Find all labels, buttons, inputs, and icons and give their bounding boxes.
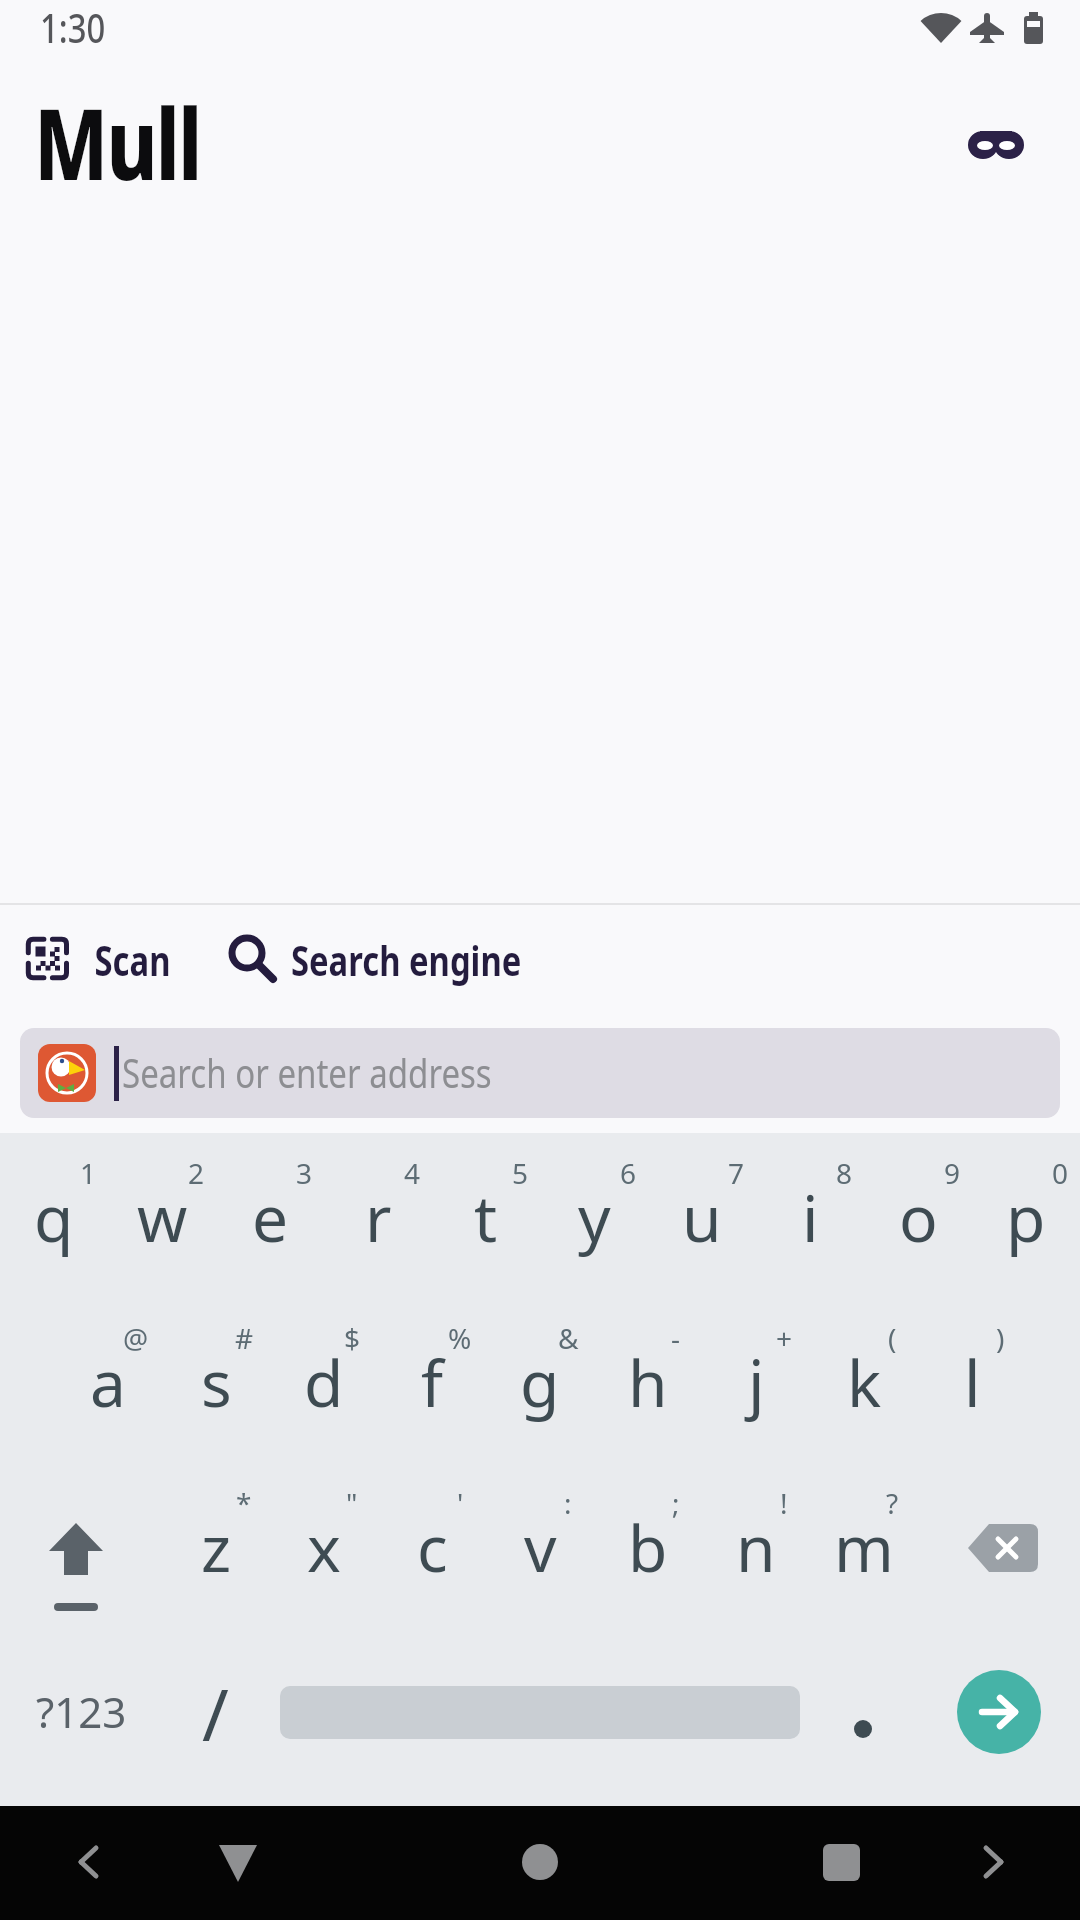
staticText: l bbox=[964, 1339, 981, 1426]
staticText: d bbox=[304, 1339, 344, 1426]
staticText: j bbox=[748, 1339, 765, 1426]
staticText: ?123 bbox=[36, 1683, 127, 1740]
staticText: e bbox=[252, 1174, 289, 1261]
staticText: q bbox=[34, 1174, 74, 1261]
staticText: 0 bbox=[1052, 1154, 1069, 1192]
staticText: ) bbox=[996, 1319, 1005, 1357]
staticText: 1 bbox=[80, 1154, 97, 1192]
staticText: b bbox=[628, 1504, 668, 1591]
staticText: 3 bbox=[296, 1154, 313, 1192]
staticText: o bbox=[899, 1174, 938, 1261]
staticText: # bbox=[235, 1319, 254, 1357]
staticText: Scan bbox=[94, 932, 170, 988]
staticText: k bbox=[847, 1339, 882, 1426]
staticText: 1:30 bbox=[40, 0, 106, 54]
staticText: 9 bbox=[944, 1154, 961, 1192]
staticText: Search engine bbox=[291, 932, 522, 988]
staticText: a bbox=[90, 1339, 126, 1426]
staticText: u bbox=[682, 1174, 722, 1261]
staticText: @ bbox=[123, 1319, 149, 1357]
staticText: f bbox=[421, 1339, 444, 1426]
staticText: & bbox=[558, 1319, 579, 1357]
staticText: h bbox=[628, 1339, 668, 1426]
staticText: ( bbox=[888, 1319, 897, 1357]
staticText: 5 bbox=[512, 1154, 529, 1192]
staticText: y bbox=[578, 1174, 611, 1261]
staticText: : bbox=[564, 1484, 572, 1522]
staticText: * bbox=[236, 1484, 252, 1522]
staticText: 6 bbox=[620, 1154, 637, 1192]
staticText: g bbox=[520, 1339, 560, 1426]
staticText: m bbox=[834, 1504, 894, 1591]
staticText: ; bbox=[672, 1484, 680, 1522]
staticText: x bbox=[307, 1504, 341, 1591]
staticText: n bbox=[736, 1504, 776, 1591]
staticText: " bbox=[346, 1484, 358, 1522]
staticText: Search or enter address bbox=[122, 1045, 492, 1099]
staticText: + bbox=[776, 1319, 793, 1357]
staticText: r bbox=[365, 1174, 392, 1261]
staticText: % bbox=[448, 1319, 472, 1357]
staticText: ! bbox=[780, 1484, 788, 1522]
staticText: $ bbox=[344, 1319, 361, 1357]
staticText: 8 bbox=[836, 1154, 853, 1192]
staticText: 7 bbox=[728, 1154, 745, 1192]
staticText: ? bbox=[886, 1484, 899, 1522]
staticText: v bbox=[524, 1504, 557, 1591]
staticText: / bbox=[202, 1664, 229, 1762]
staticText: i bbox=[802, 1174, 819, 1261]
staticText: Mull bbox=[34, 75, 201, 208]
staticText: w bbox=[137, 1174, 188, 1261]
staticText: 2 bbox=[188, 1154, 205, 1192]
staticText: 4 bbox=[404, 1154, 421, 1192]
staticText: t bbox=[474, 1174, 498, 1261]
staticText: ' bbox=[457, 1484, 464, 1522]
staticText: - bbox=[671, 1319, 681, 1357]
staticText: z bbox=[201, 1504, 232, 1591]
staticText: c bbox=[417, 1504, 448, 1591]
staticText: p bbox=[1006, 1174, 1046, 1261]
staticText: s bbox=[201, 1339, 232, 1426]
